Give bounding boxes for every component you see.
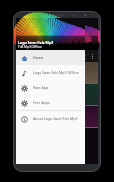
button[interactable]: More options	[88, 52, 97, 61]
staticText: Full Mp3 Offline	[18, 45, 42, 49]
staticText: Home	[33, 55, 44, 60]
button[interactable]: Free Apps	[16, 95, 85, 110]
button[interactable]	[16, 62, 98, 84]
button[interactable]: Rate App	[16, 80, 85, 95]
button[interactable]: Share	[77, 51, 88, 62]
staticText: Lagu Iwan Fals Mp3	[18, 40, 54, 45]
staticText: Free Apps	[33, 100, 50, 105]
button[interactable]	[85, 18, 98, 164]
button[interactable]: Home	[16, 50, 85, 65]
button[interactable]: Lagu Iwan Fals Mp3 Offline	[16, 65, 85, 80]
staticText: Rate App	[33, 85, 49, 90]
staticText: Lagu Iwan Fals Mp3 Offline	[33, 70, 79, 75]
button[interactable]	[16, 84, 98, 106]
button[interactable]	[16, 106, 98, 128]
staticText: About Lagu Iwan Fals Mp3	[33, 116, 78, 121]
button[interactable]: About Lagu Iwan Fals Mp3	[16, 111, 85, 126]
